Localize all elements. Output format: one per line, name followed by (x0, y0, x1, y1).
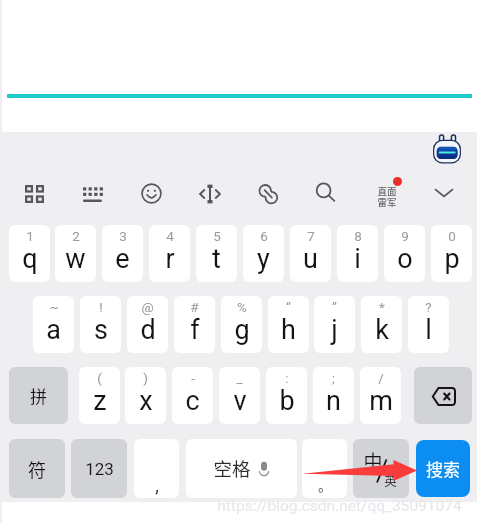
staticText: i (354, 243, 361, 275)
staticText: # (190, 299, 199, 315)
button[interactable]: % (221, 296, 262, 353)
staticText: 123 (85, 459, 114, 479)
button[interactable]: 符 (9, 439, 65, 498)
button[interactable]: ? (408, 296, 449, 353)
button[interactable]: _ (219, 367, 260, 424)
staticText: 空格 (213, 455, 251, 482)
button[interactable]: / (360, 367, 401, 424)
staticText: 3 (119, 228, 127, 244)
button[interactable]: 7 (290, 225, 331, 282)
staticText: g (234, 314, 250, 346)
button[interactable]: 直面 雷军 (372, 176, 404, 210)
staticText: t (212, 243, 221, 275)
button[interactable]: 1 (9, 225, 50, 282)
button[interactable]: Search (315, 182, 336, 203)
staticText: u (303, 243, 318, 275)
button[interactable]: @ (127, 296, 168, 353)
button[interactable]: 拼 (9, 367, 68, 424)
staticText: : (285, 370, 289, 386)
button[interactable]: Edit text (199, 183, 221, 205)
button[interactable]: 中 (353, 439, 409, 498)
button[interactable]: ” (314, 296, 355, 353)
button[interactable]: 123 (71, 439, 127, 498)
button[interactable]: 6 (243, 225, 284, 282)
button[interactable]: Backspace (414, 367, 472, 424)
staticText: ) (143, 370, 148, 386)
staticText: 4 (166, 228, 174, 244)
staticText: - (191, 370, 195, 386)
staticText: 拼 (30, 383, 47, 408)
staticText: “ (286, 299, 291, 315)
staticText: 英 (384, 471, 397, 489)
staticText: y (257, 243, 270, 275)
staticText: o (397, 243, 413, 275)
button[interactable]: * (361, 296, 402, 353)
button[interactable]: “ (268, 296, 309, 353)
staticText: a (46, 314, 61, 346)
staticText: 5 (213, 228, 221, 244)
button[interactable]: 0 (431, 225, 472, 282)
staticText: https://blog.csdn.net/qq_35091074 (217, 497, 462, 515)
staticText: 中 (363, 447, 383, 475)
staticText: b (279, 385, 295, 417)
staticText: ~ (49, 299, 59, 315)
staticText: 1 (26, 228, 34, 244)
button[interactable]: ~ (33, 296, 74, 353)
button[interactable]: # (174, 296, 215, 353)
staticText: f (190, 314, 200, 346)
button[interactable]: Emoji (141, 183, 162, 204)
staticText: , (155, 475, 159, 496)
staticText: % (237, 299, 247, 315)
staticText: x (139, 385, 153, 417)
button[interactable]: ) (125, 367, 166, 424)
button[interactable]: AI assistant (432, 134, 462, 164)
staticText: e (115, 243, 130, 275)
staticText: * (379, 299, 385, 315)
button[interactable]: 空格 (186, 439, 297, 498)
staticText: _ (236, 370, 243, 386)
staticText: j (331, 314, 338, 346)
button[interactable]: ( (79, 367, 120, 424)
button[interactable]: 4 (149, 225, 190, 282)
button[interactable]: 。 (302, 439, 347, 498)
staticText: s (94, 314, 108, 346)
staticText: @ (141, 299, 154, 315)
staticText: p (444, 243, 460, 275)
staticText: / (378, 370, 384, 386)
button[interactable]: 3 (102, 225, 143, 282)
staticText: 8 (354, 228, 362, 244)
staticText: ? (425, 299, 432, 315)
staticText: 。 (318, 475, 332, 495)
button[interactable]: : (266, 367, 307, 424)
button[interactable]: 2 (55, 225, 96, 282)
staticText: 7 (307, 228, 315, 244)
button[interactable]: 8 (337, 225, 378, 282)
button[interactable]: ; (313, 367, 354, 424)
button[interactable]: , (134, 439, 179, 498)
button[interactable]: 5 (196, 225, 237, 282)
button[interactable]: 搜索 (416, 440, 470, 497)
button[interactable]: Hide keyboard (434, 187, 454, 199)
staticText: m (369, 385, 393, 417)
button[interactable]: Link (257, 183, 279, 205)
staticText: 9 (401, 228, 409, 244)
staticText: ” (332, 299, 337, 315)
staticText: w (65, 243, 86, 275)
button[interactable]: - (172, 367, 213, 424)
staticText: r (165, 243, 175, 275)
staticText: h (281, 314, 296, 346)
button[interactable]: 9 (384, 225, 425, 282)
staticText: ; (332, 370, 335, 386)
staticText: ( (97, 370, 102, 386)
staticText: l (425, 314, 432, 346)
button[interactable]: ! (80, 296, 121, 353)
staticText: 符 (28, 456, 46, 482)
staticText: 0 (448, 228, 456, 244)
staticText: v (233, 385, 247, 417)
staticText: 2 (72, 228, 80, 244)
staticText: 6 (260, 228, 268, 244)
button[interactable]: Grid (25, 185, 44, 203)
staticText: d (140, 314, 156, 346)
staticText: n (326, 385, 341, 417)
button[interactable]: Keyboard (83, 186, 103, 203)
